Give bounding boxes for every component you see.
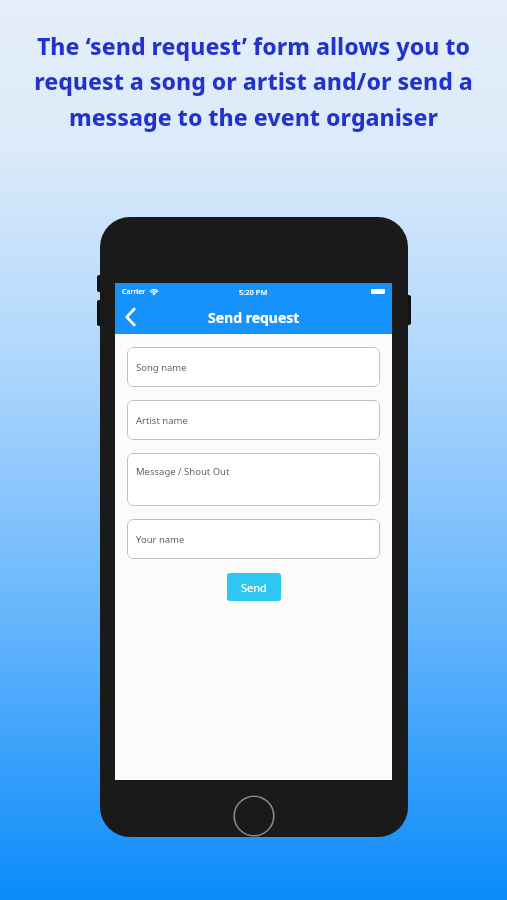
button[interactable]: Back [115, 300, 145, 334]
staticText: Artist name [136, 414, 188, 427]
button[interactable]: Home [233, 795, 275, 837]
button[interactable]: Song name [127, 347, 380, 387]
staticText: Your name [136, 533, 185, 546]
button[interactable]: Send [227, 573, 281, 601]
staticText: Carrier [122, 287, 146, 297]
staticText: Song name [136, 361, 187, 374]
staticText: Send request [208, 308, 300, 327]
staticText: Send [241, 580, 267, 595]
button[interactable]: Message / Shout Out [127, 453, 380, 506]
staticText: The ‘send request’ form allows you to re… [26, 30, 481, 133]
staticText: Message / Shout Out [136, 465, 230, 478]
button[interactable]: Your name [127, 519, 380, 559]
button[interactable]: Artist name [127, 400, 380, 440]
staticText: 5:20 PM [239, 287, 268, 297]
